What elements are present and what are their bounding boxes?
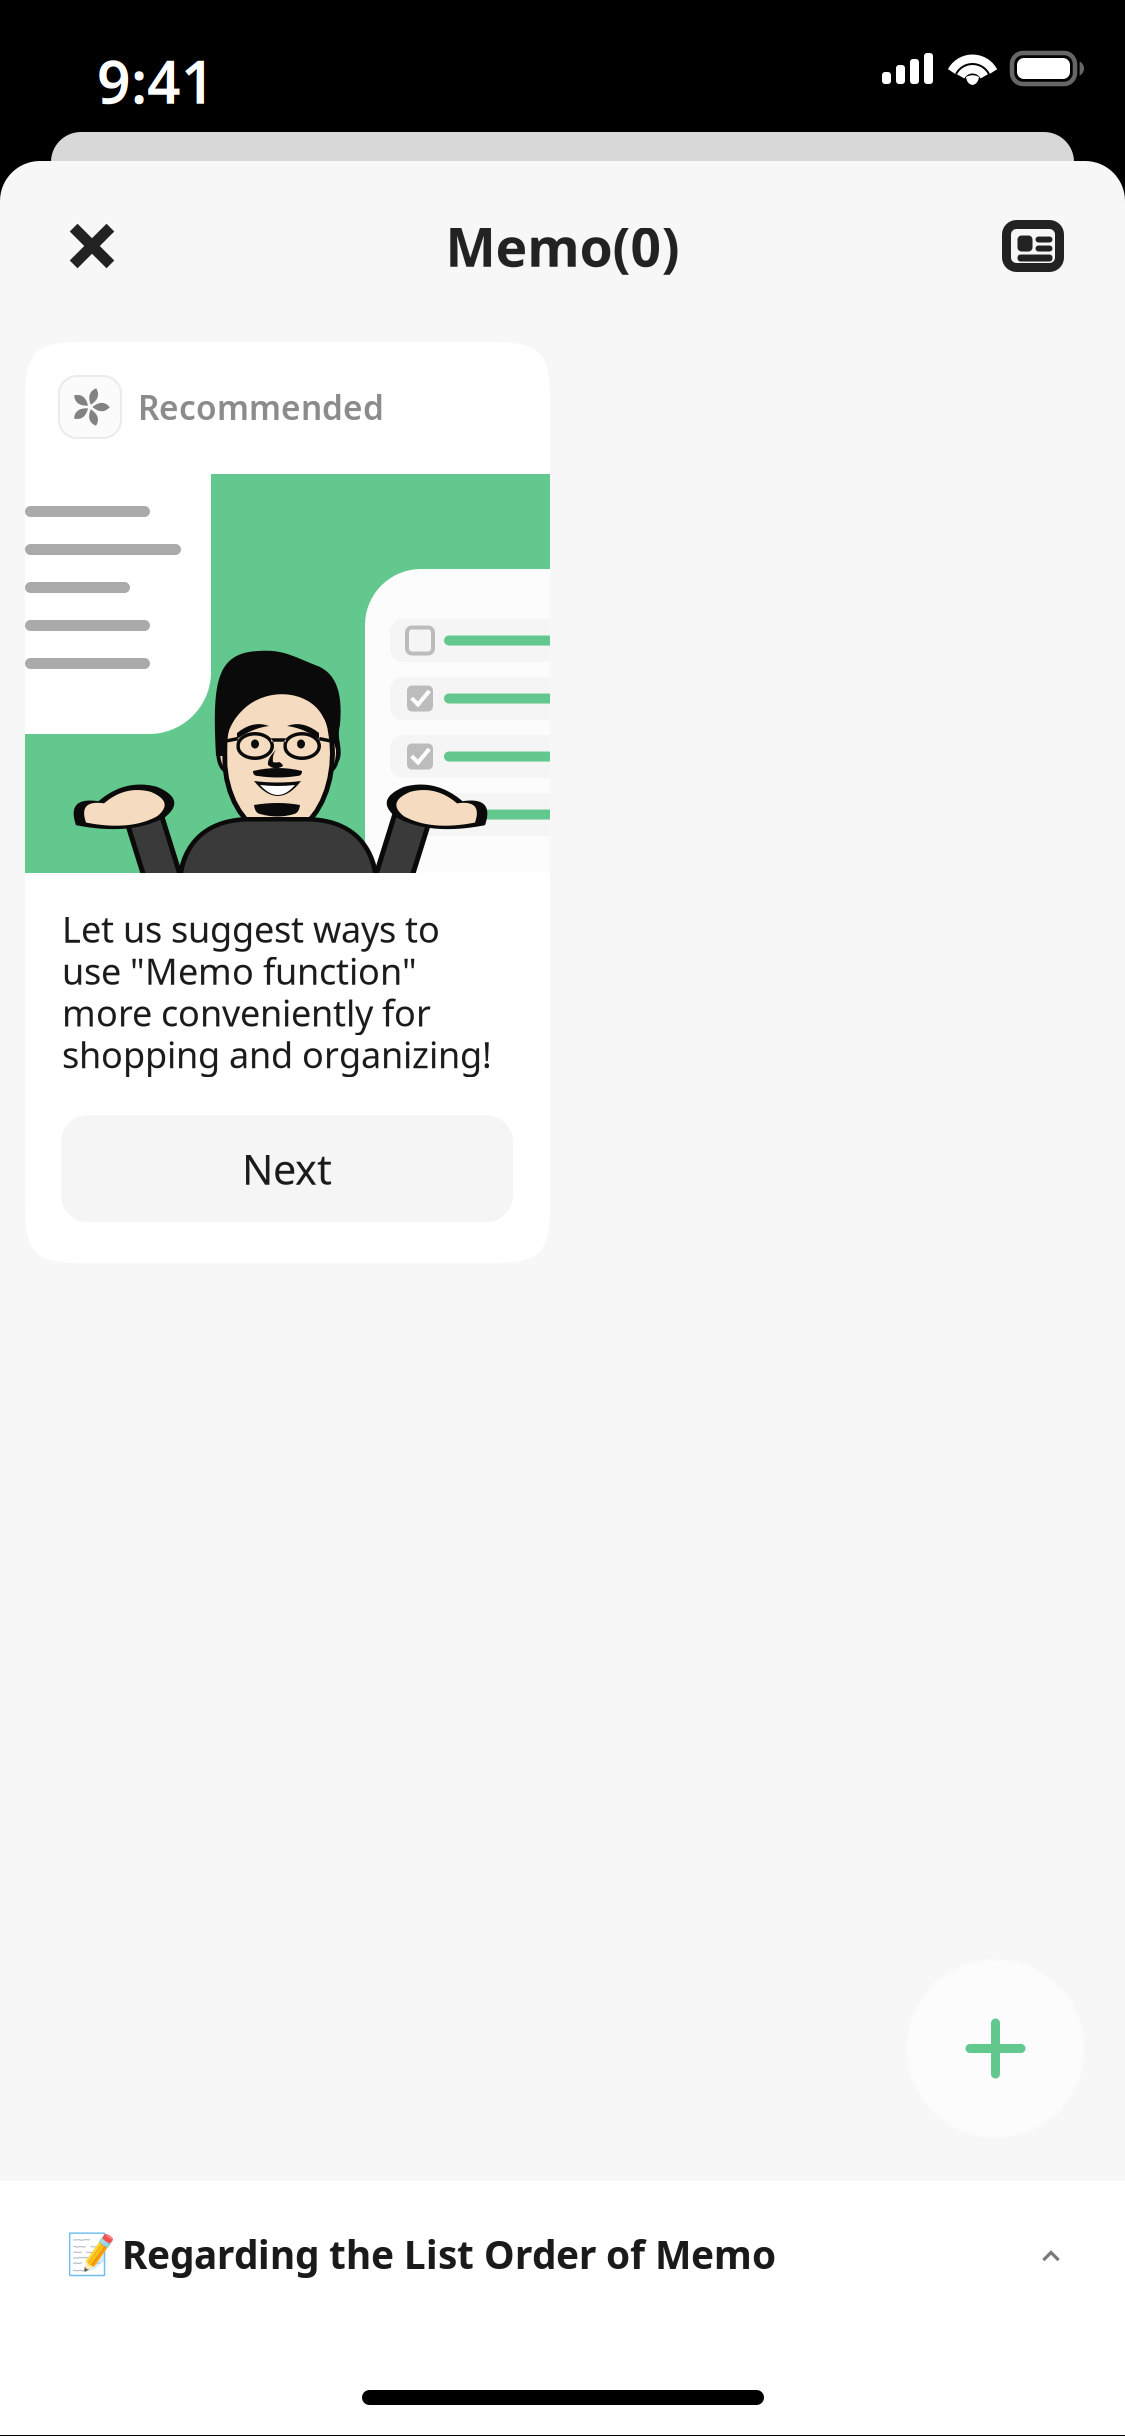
staticText: Memo(0)	[445, 211, 679, 281]
button[interactable]: New memo	[906, 1959, 1085, 2138]
staticText: Regarding the List Order of Memo	[122, 2228, 776, 2280]
button[interactable]: Memo templates	[979, 192, 1087, 300]
staticText: Recommended	[138, 385, 384, 429]
staticText: Let us suggest ways to use "Memo functio…	[62, 905, 492, 1078]
staticText: 9:41	[97, 42, 215, 120]
button[interactable]: 📝	[0, 2181, 1125, 2327]
button[interactable]: Close	[38, 192, 146, 300]
staticText: 📝	[66, 2231, 116, 2277]
staticText: Next	[242, 1141, 332, 1196]
button[interactable]: Next	[61, 1115, 513, 1222]
